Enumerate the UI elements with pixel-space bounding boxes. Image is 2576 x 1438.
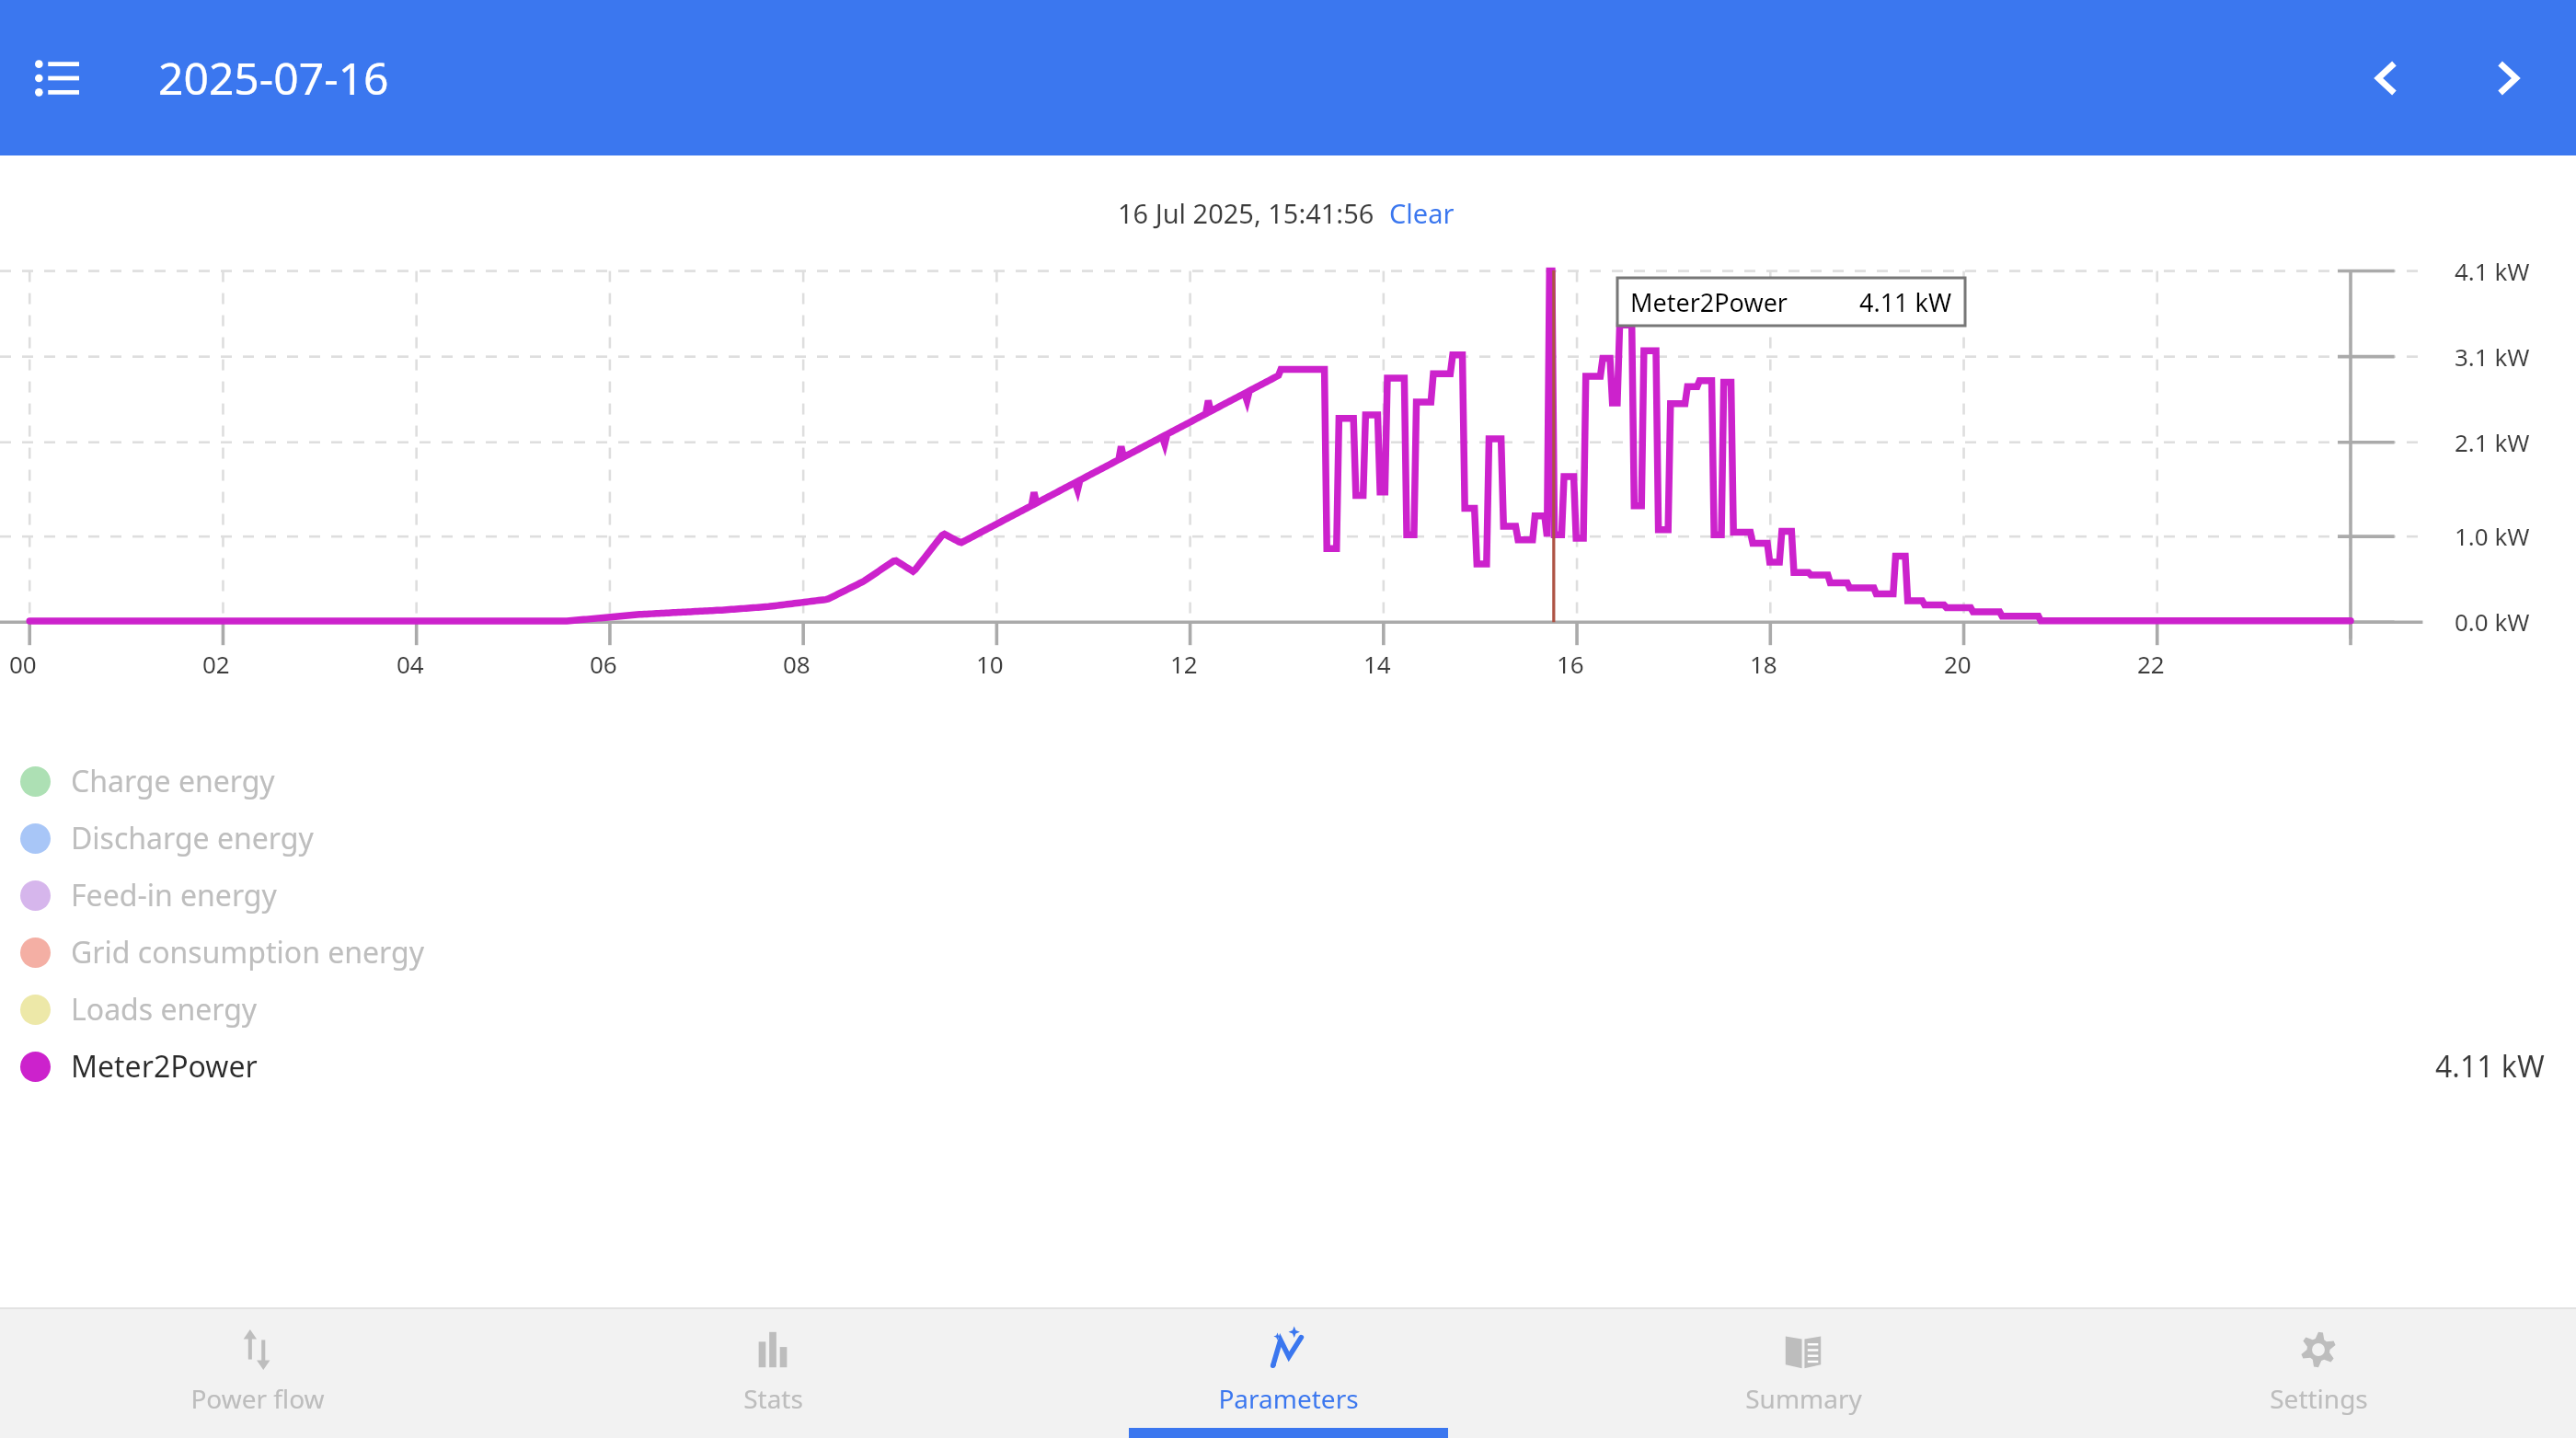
staticText: 4.11 kW: [2435, 1046, 2545, 1087]
staticText: 20: [1944, 648, 1972, 680]
staticText: Stats: [743, 1381, 803, 1416]
staticText: Meter2Power: [1630, 285, 1788, 319]
staticText: Loads energy: [71, 989, 258, 1030]
button[interactable]: Meter2Power: [0, 1038, 2576, 1095]
button[interactable]: Discharge energy: [0, 810, 2576, 867]
staticText: 16: [1557, 648, 1584, 680]
staticText: 00: [9, 648, 37, 680]
button[interactable]: Previous day: [2342, 34, 2431, 122]
staticText: Meter2Power: [71, 1046, 258, 1087]
staticText: 12: [1170, 648, 1198, 680]
button[interactable]: Clear: [1386, 191, 1458, 235]
staticText: 22: [2137, 648, 2165, 680]
button[interactable]: Power flow: [0, 1309, 515, 1438]
staticText: Parameters: [1218, 1381, 1359, 1416]
staticText: 3.1 kW: [2455, 340, 2563, 373]
button[interactable]: Feed-in energy: [0, 867, 2576, 924]
staticText: 0.0 kW: [2455, 605, 2563, 638]
staticText: 16 Jul 2025, 15:41:56: [1118, 195, 1374, 231]
staticText: Charge energy: [71, 761, 275, 801]
staticText: 2025-07-16: [158, 48, 389, 108]
staticText: Feed-in energy: [71, 875, 277, 915]
button[interactable]: Settings: [2061, 1309, 2576, 1438]
staticText: 06: [590, 648, 617, 680]
button[interactable]: Grid consumption energy: [0, 924, 2576, 981]
button[interactable]: Parameters: [1030, 1309, 1546, 1438]
button[interactable]: Loads energy: [0, 981, 2576, 1038]
staticText: 2.1 kW: [2455, 426, 2563, 458]
staticText: 08: [783, 648, 811, 680]
staticText: Grid consumption energy: [71, 932, 425, 972]
button[interactable]: Menu: [13, 34, 101, 122]
staticText: 14: [1363, 648, 1391, 680]
staticText: Discharge energy: [71, 818, 314, 858]
button[interactable]: Stats: [515, 1309, 1030, 1438]
staticText: 02: [202, 648, 230, 680]
staticText: 4.1 kW: [2455, 255, 2563, 287]
staticText: 10: [976, 648, 1004, 680]
staticText: 1.0 kW: [2455, 520, 2563, 552]
staticText: Summary: [1745, 1381, 1862, 1416]
button[interactable]: Charge energy: [0, 753, 2576, 810]
button[interactable]: Summary: [1546, 1309, 2061, 1438]
button[interactable]: Next day: [2464, 34, 2552, 122]
staticText: Power flow: [190, 1381, 325, 1416]
staticText: 4.11 kW: [1859, 285, 1952, 319]
staticText: 04: [397, 648, 424, 680]
staticText: 18: [1750, 648, 1777, 680]
staticText: Settings: [2270, 1381, 2368, 1416]
staticText: Clear: [1389, 195, 1455, 231]
